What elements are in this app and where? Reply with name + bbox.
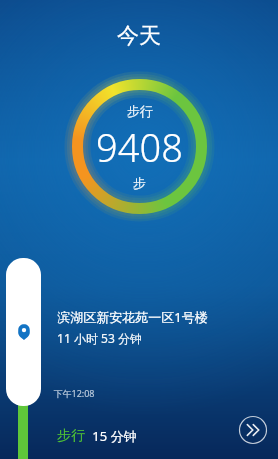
staticText: 15 分钟 (92, 427, 137, 445)
staticText: 11 小时 53 分钟 (57, 330, 142, 346)
button[interactable]: 滨湖区新安花苑一区1号楼 (57, 308, 208, 346)
staticText: 滨湖区新安花苑一区1号楼 (57, 308, 208, 326)
staticText: 9408 (96, 121, 183, 173)
button[interactable]: 步行 (70, 77, 209, 216)
staticText: 步 (133, 175, 146, 191)
staticText: 步行 (127, 103, 153, 119)
staticText: 步行 (57, 427, 85, 445)
button[interactable]: Location (6, 258, 41, 406)
staticText: 下午12:08 (53, 387, 95, 399)
staticText: 今天 (117, 22, 161, 50)
button[interactable]: 步行 (57, 427, 137, 445)
button[interactable]: More (238, 415, 268, 445)
